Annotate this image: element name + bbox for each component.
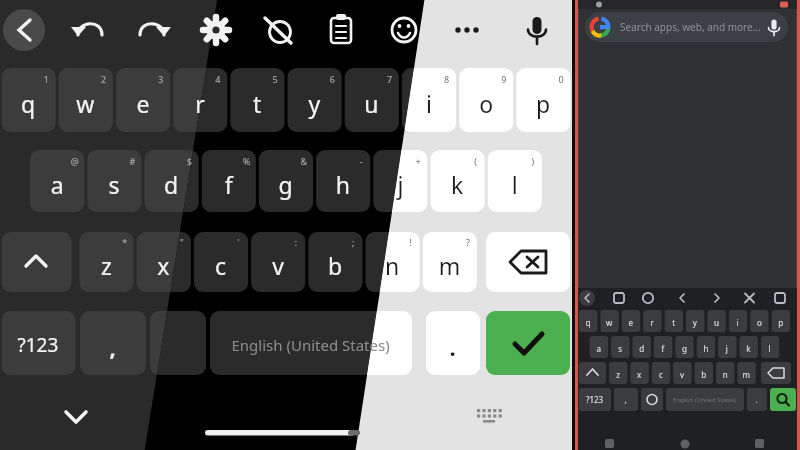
button[interactable]: Comma xyxy=(80,311,146,375)
button[interactable]: Period xyxy=(426,311,480,375)
button[interactable]: Key j xyxy=(372,150,426,212)
button[interactable]: Key d xyxy=(144,150,198,212)
button[interactable]: Key p xyxy=(515,68,569,132)
button[interactable]: Shift xyxy=(1,232,71,292)
button[interactable]: Key l xyxy=(487,150,541,212)
button[interactable]: Emoji keyboard xyxy=(150,311,206,375)
button[interactable]: Key c xyxy=(193,232,247,292)
button[interactable]: Key t xyxy=(229,68,283,132)
button[interactable]: Key i xyxy=(401,68,455,132)
button[interactable]: Key k xyxy=(430,150,484,212)
button[interactable]: Key s xyxy=(86,150,140,212)
button[interactable]: Key z xyxy=(79,232,133,292)
button[interactable]: Settings xyxy=(194,8,238,52)
button[interactable]: Key g xyxy=(258,150,312,212)
button[interactable]: Key q xyxy=(1,68,55,132)
button[interactable]: Key v xyxy=(250,232,304,292)
button[interactable]: Voice input xyxy=(515,8,559,52)
button[interactable]: Redo xyxy=(130,8,174,52)
button[interactable]: Key o xyxy=(458,68,512,132)
button[interactable]: Key e xyxy=(115,68,169,132)
button[interactable]: Hide keyboard xyxy=(54,395,98,439)
button[interactable]: More options xyxy=(445,8,489,52)
button[interactable]: Back xyxy=(2,8,46,52)
button[interactable]: Key w xyxy=(58,68,112,132)
button[interactable]: Key u xyxy=(344,68,398,132)
button[interactable]: Symbols xyxy=(1,311,75,375)
button[interactable]: Backspace xyxy=(486,232,570,292)
button[interactable]: Switch keyboard xyxy=(465,395,509,439)
button[interactable]: Key y xyxy=(287,68,341,132)
button[interactable]: Key b xyxy=(307,232,361,292)
button[interactable]: Key r xyxy=(172,68,226,132)
button[interactable]: Key m xyxy=(422,232,476,292)
button[interactable]: Key f xyxy=(201,150,255,212)
button[interactable]: Emoji xyxy=(382,8,426,52)
button[interactable]: Enter xyxy=(486,311,570,375)
button[interactable]: Key x xyxy=(136,232,190,292)
button[interactable]: Key a xyxy=(29,150,83,212)
button[interactable]: Key n xyxy=(365,232,419,292)
button[interactable]: Clipboard xyxy=(319,8,363,52)
button[interactable]: Undo xyxy=(68,8,112,52)
button[interactable]: Search apps, web, and more xyxy=(585,12,790,42)
button[interactable]: Stickers off xyxy=(256,8,300,52)
button[interactable]: Key h xyxy=(315,150,369,212)
button[interactable]: Space, English (United States) xyxy=(210,311,412,375)
